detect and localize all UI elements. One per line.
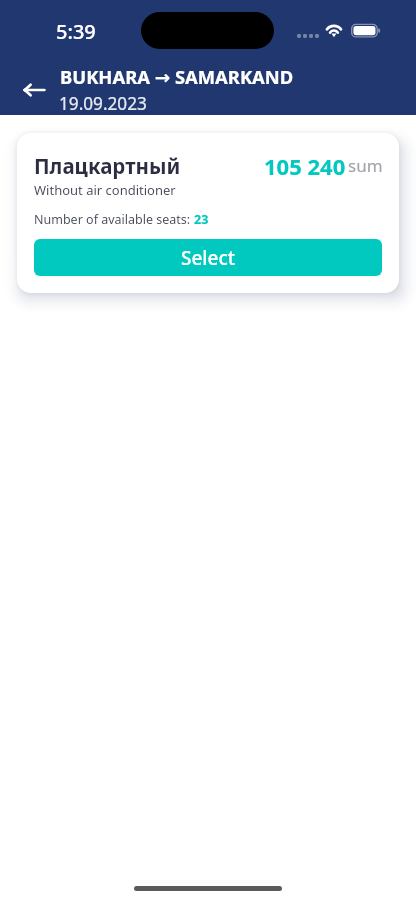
staticText: 19.09.2023 [59,92,147,115]
staticText: Select [181,245,235,271]
staticText: Without air conditioner [34,181,176,199]
button[interactable]: Select [34,239,382,276]
button[interactable]: Плацкартный [17,133,399,293]
staticText: 5:39 [56,18,96,45]
staticText: sum [348,154,383,177]
staticText: Number of available seats: [34,211,194,228]
staticText: 105 240 [264,151,346,181]
staticText: BUKHARA → SAMARKAND [60,64,294,89]
button[interactable]: Back [12,70,56,110]
staticText: 23 [194,211,209,228]
staticText: Плацкартный [34,152,181,180]
